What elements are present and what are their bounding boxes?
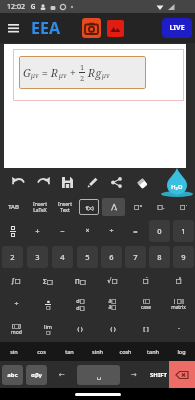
staticText: □ bbox=[46, 330, 51, 335]
button[interactable]: ∂□ bbox=[96, 292, 129, 316]
staticText: Σ□ bbox=[43, 277, 53, 286]
staticText: (□ bbox=[143, 297, 150, 304]
button[interactable]: αβγ bbox=[26, 365, 47, 385]
button[interactable]: 8 bbox=[149, 246, 170, 268]
button[interactable]: sinh bbox=[83, 342, 111, 361]
button[interactable]: SHIFT bbox=[147, 361, 169, 388]
button[interactable]: = bbox=[123, 218, 147, 244]
button[interactable] bbox=[106, 172, 126, 192]
staticText: μν bbox=[59, 71, 67, 80]
button[interactable]: ( ) bbox=[64, 316, 96, 342]
button[interactable]: + bbox=[25, 218, 50, 244]
staticText: EEA bbox=[31, 17, 60, 39]
staticText: |□| bbox=[173, 297, 185, 304]
button[interactable]: G bbox=[19, 56, 146, 89]
button[interactable] bbox=[0, 218, 25, 244]
button[interactable]: cos bbox=[27, 342, 55, 361]
button[interactable] bbox=[57, 172, 77, 192]
button[interactable]: ⋀̣ bbox=[102, 198, 125, 216]
button[interactable]: ∫□ bbox=[0, 270, 32, 292]
button[interactable]: □̊ bbox=[162, 270, 195, 292]
staticText: 2 bbox=[80, 73, 85, 83]
button[interactable]: ÷ bbox=[0, 292, 32, 316]
button[interactable]: 3 bbox=[27, 246, 48, 268]
button[interactable]: d□ bbox=[64, 292, 96, 316]
button[interactable]: f(x) bbox=[79, 199, 99, 215]
button[interactable]: ÷ bbox=[99, 218, 123, 244]
staticText: □. bbox=[157, 203, 165, 211]
staticText: Rg bbox=[85, 65, 102, 80]
button[interactable]: □ᵃ bbox=[126, 196, 149, 218]
button[interactable]: H₂O bbox=[160, 167, 194, 197]
button[interactable]: 4 bbox=[52, 246, 73, 268]
staticText: log bbox=[177, 348, 186, 355]
staticText: Insert Text bbox=[58, 201, 72, 214]
button[interactable]: Insert Text bbox=[53, 196, 77, 218]
button[interactable]: ( ) bbox=[96, 316, 129, 342]
button[interactable] bbox=[33, 172, 53, 192]
button[interactable]: 7 bbox=[125, 246, 146, 268]
staticText: · bbox=[178, 324, 180, 334]
button[interactable]: − bbox=[50, 218, 75, 244]
button[interactable] bbox=[82, 172, 102, 192]
button[interactable]: TAB bbox=[0, 196, 26, 218]
button[interactable] bbox=[107, 20, 124, 37]
button[interactable]: Σ□ bbox=[32, 270, 64, 292]
staticText: ← bbox=[59, 371, 65, 379]
staticText: ⋀̣ bbox=[111, 203, 117, 211]
button[interactable]: · bbox=[162, 316, 195, 342]
button[interactable]: ␣ bbox=[77, 365, 120, 385]
staticText: ( ) bbox=[77, 325, 83, 333]
button[interactable] bbox=[5, 19, 23, 37]
button[interactable]: □̇ bbox=[129, 270, 162, 292]
button[interactable]: 6 bbox=[101, 246, 122, 268]
button[interactable]: × bbox=[75, 218, 99, 244]
button[interactable] bbox=[8, 172, 28, 192]
staticText: matrix bbox=[171, 304, 186, 311]
button[interactable]: ▪ bbox=[32, 292, 64, 316]
button[interactable] bbox=[82, 18, 101, 38]
staticText: abc bbox=[7, 371, 18, 379]
staticText: ∂□ bbox=[108, 298, 117, 304]
button[interactable]: 9 bbox=[173, 246, 194, 268]
staticText: ÷ bbox=[109, 226, 114, 236]
staticText: 5 bbox=[85, 252, 90, 262]
staticText: TAB bbox=[8, 203, 19, 211]
button[interactable]: 2 bbox=[2, 246, 23, 268]
button[interactable]: lim bbox=[32, 316, 64, 342]
button[interactable]: sin bbox=[0, 342, 27, 361]
button[interactable]: 1 bbox=[173, 220, 194, 242]
button[interactable]: log bbox=[167, 342, 195, 361]
button[interactable]: Insert LaTeX bbox=[26, 196, 53, 218]
button[interactable]: LIVE bbox=[162, 18, 192, 38]
button[interactable]: tan bbox=[55, 342, 83, 361]
button[interactable] bbox=[131, 172, 151, 192]
staticText: □̊ bbox=[175, 277, 182, 285]
staticText: case bbox=[141, 304, 151, 311]
button[interactable]: (□ bbox=[129, 292, 162, 316]
button[interactable]: √□ bbox=[96, 270, 129, 292]
staticText: + bbox=[67, 65, 79, 80]
button[interactable]: → bbox=[120, 361, 147, 388]
button[interactable]: □˙ bbox=[172, 196, 195, 218]
button[interactable]: tanh bbox=[139, 342, 167, 361]
staticText: □ᵃ bbox=[134, 203, 142, 211]
button[interactable]: [□] bbox=[0, 316, 32, 342]
button[interactable]: |□| bbox=[162, 292, 195, 316]
staticText: [□] bbox=[12, 322, 21, 329]
button[interactable]: cosh bbox=[111, 342, 139, 361]
button[interactable]: abc bbox=[2, 365, 23, 385]
staticText: → bbox=[131, 371, 137, 379]
button[interactable]: [ ] bbox=[129, 316, 162, 342]
button[interactable]: ← bbox=[47, 361, 77, 388]
staticText: ▪ bbox=[47, 299, 50, 304]
staticText: tan bbox=[65, 348, 74, 355]
button[interactable]: Π□ bbox=[64, 270, 96, 292]
button[interactable]: 0 bbox=[149, 220, 170, 242]
button[interactable] bbox=[169, 361, 195, 388]
button[interactable]: □. bbox=[149, 196, 172, 218]
button[interactable]: 5 bbox=[77, 246, 98, 268]
staticText: √□ bbox=[107, 277, 118, 285]
staticText: d□ bbox=[76, 297, 85, 304]
staticText: tanh bbox=[147, 348, 159, 355]
